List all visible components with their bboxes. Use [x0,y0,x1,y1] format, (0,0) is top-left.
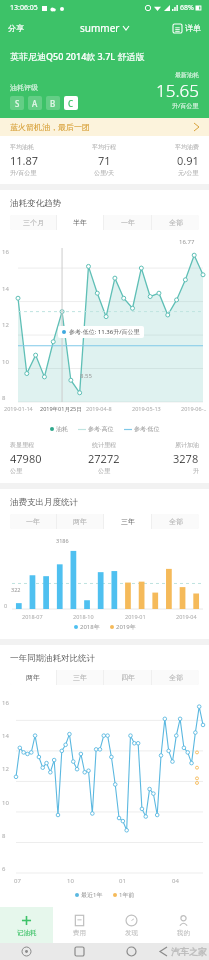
staticText: 15.65 [156,79,199,102]
staticText: 10 [67,877,74,885]
staticText: 2018-07 [22,613,43,620]
staticText: 3186 [56,537,69,544]
staticText: 16 [2,699,9,707]
staticText: 47980 [10,451,42,466]
button[interactable]: 四年 [104,670,151,685]
staticText: 14 [2,285,9,293]
button[interactable]: 三个月 [10,215,56,230]
staticText: A [32,98,38,109]
staticText: 详单 [185,23,201,33]
staticText: B [50,98,56,109]
staticText: 12 [2,765,9,773]
staticText: 四年 [121,673,135,682]
staticText: 油费支出月度统计 [10,497,78,508]
staticText: 三年 [121,517,135,526]
staticText: 6 [2,865,6,873]
button[interactable]: 全部 [152,514,199,529]
button[interactable]: A [28,96,42,110]
staticText: 两年 [73,517,87,526]
button[interactable]: 全部 [152,215,199,230]
staticText: 07 [14,877,21,885]
staticText: 全部 [169,673,183,682]
staticText: 表显里程 [10,441,34,449]
staticText: 两年 [26,673,40,682]
staticText: 平均油费 [175,143,199,151]
staticText: 322 [11,586,21,593]
staticText: 2019-01 [125,613,146,620]
staticText: 半年 [73,218,87,227]
staticText: 一年 [26,517,40,526]
staticText: 11.87 [10,153,39,168]
staticText: 8.55 [80,372,92,380]
staticText: 16 [2,248,9,256]
button[interactable]: 分享 [0,19,32,37]
staticText: 2019-04-8 [86,405,112,412]
staticText: 记油耗 [17,929,37,937]
staticText: 一年 [121,218,135,227]
staticText: C [68,98,74,109]
button[interactable]: 全部 [152,670,199,685]
button[interactable]: 一年 [10,514,56,529]
staticText: 参考·高位 [88,425,114,433]
staticText: 10 [2,799,9,807]
staticText: -2-18 [53,405,66,412]
staticText: 71 [98,153,111,168]
staticText: 2019年01月25日 [40,405,82,413]
button[interactable]: 一年 [104,215,151,230]
button[interactable]: 三年 [57,670,103,685]
staticText: summer [80,21,120,35]
button[interactable]: 两年 [10,670,56,685]
staticText: 发现 [125,929,138,937]
staticText: 油耗 [56,425,68,433]
staticText: 27272 [88,451,120,466]
staticText: 三个月 [23,218,44,227]
staticText: 平均油耗 [10,143,34,151]
staticText: 68% [180,3,194,13]
staticText: 2018年 [80,623,100,631]
staticText: 参考·低位 [134,425,160,433]
button[interactable]: B [46,96,60,110]
button[interactable]: 两年 [57,514,103,529]
button[interactable]: 蓝火箭机油，最后一团 [0,118,209,136]
staticText: 公里 [10,467,22,475]
staticText: 12 [2,321,9,329]
staticText: 14 [2,732,9,740]
button[interactable]: S [10,96,24,110]
staticText: 0 [4,602,8,609]
staticText: 2019年 [116,623,136,631]
button[interactable]: 费用 [53,907,105,943]
button[interactable]: summer [76,17,133,39]
button[interactable]: 详单 [165,19,209,37]
staticText: 参考·低位: 11.36升/百公里 [69,328,140,336]
staticText: 0.91 [177,153,199,168]
staticText: 2019-06-.. [181,405,207,412]
staticText: 累计加油 [175,441,199,449]
staticText: 费用 [73,929,86,937]
staticText: 8 [2,394,6,402]
button[interactable]: 我的 [157,907,209,943]
staticText: 油耗评级 [10,83,38,92]
button[interactable]: 记油耗 [0,907,53,943]
staticText: 3278 [173,451,199,466]
staticText: 一年同期油耗对比统计 [10,653,95,664]
staticText: 平均行程 [92,143,116,151]
staticText: S [15,98,20,109]
staticText: 公里/天 [94,169,115,177]
staticText: 8 [2,832,6,840]
button[interactable]: 发现 [105,907,157,943]
staticText: 公里 [98,467,110,475]
staticText: 统计里程 [92,441,116,449]
staticText: 升/百公里 [10,169,37,177]
staticText: 01 [119,877,126,885]
staticText: 分享 [8,23,24,33]
button[interactable]: 半年 [57,215,103,230]
staticText: 13:06:05 [10,3,38,13]
staticText: 英菲尼迪Q50 2014款 3.7L 舒适版 [10,50,145,62]
staticText: 升/百公里 [172,102,199,110]
staticText: 全部 [169,517,183,526]
button[interactable]: C [64,96,78,110]
staticText: 元/公里 [178,169,199,177]
staticText: 我的 [177,929,190,937]
staticText: 16.77 [179,238,195,246]
button[interactable]: 三年 [104,514,151,529]
